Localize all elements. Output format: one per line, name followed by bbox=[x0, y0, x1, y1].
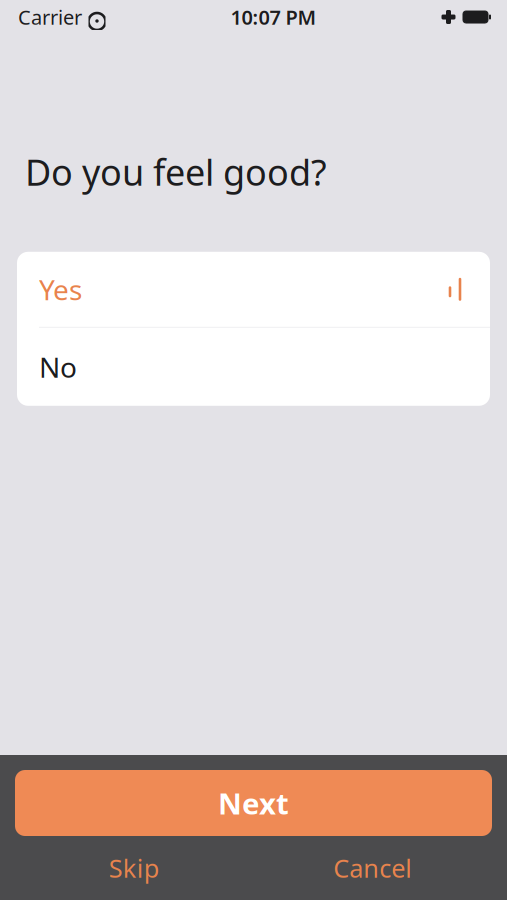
staticText: Cancel bbox=[333, 851, 412, 885]
staticText: Next bbox=[218, 783, 289, 822]
staticText: 10:07 PM bbox=[230, 4, 316, 30]
button[interactable]: Next bbox=[15, 770, 492, 836]
button[interactable]: Yes bbox=[17, 252, 490, 327]
staticText: Skip bbox=[109, 851, 160, 885]
button[interactable]: Skip bbox=[15, 844, 253, 892]
staticText: Carrier bbox=[18, 4, 82, 30]
staticText: Do you feel good? bbox=[25, 148, 327, 196]
staticText: No bbox=[39, 348, 77, 385]
button[interactable]: Cancel bbox=[253, 844, 492, 892]
button[interactable]: No bbox=[17, 328, 490, 406]
staticText: Yes bbox=[39, 271, 82, 308]
